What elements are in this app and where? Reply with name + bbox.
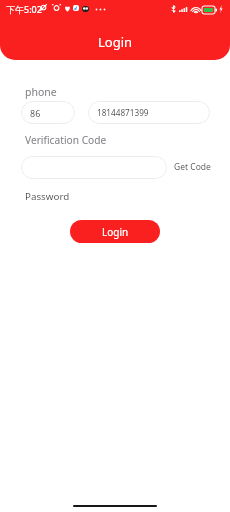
staticText: 86 — [30, 107, 41, 119]
staticText: Verification Code — [25, 133, 107, 147]
staticText: Password — [25, 190, 70, 203]
button[interactable]: 18144871399 — [88, 101, 210, 124]
button[interactable] — [21, 156, 167, 179]
staticText: 18144871399 — [97, 107, 149, 118]
staticText: Get Code — [174, 161, 211, 173]
staticText: phone — [25, 85, 57, 99]
other: Verification code input — [21, 156, 167, 179]
button[interactable]: Get Code — [170, 155, 214, 178]
staticText: Login — [98, 33, 133, 51]
staticText: 下午5:02 — [6, 3, 42, 15]
button[interactable]: 86 — [21, 101, 75, 124]
button[interactable]: Login — [70, 220, 160, 243]
staticText: Login — [102, 225, 129, 239]
